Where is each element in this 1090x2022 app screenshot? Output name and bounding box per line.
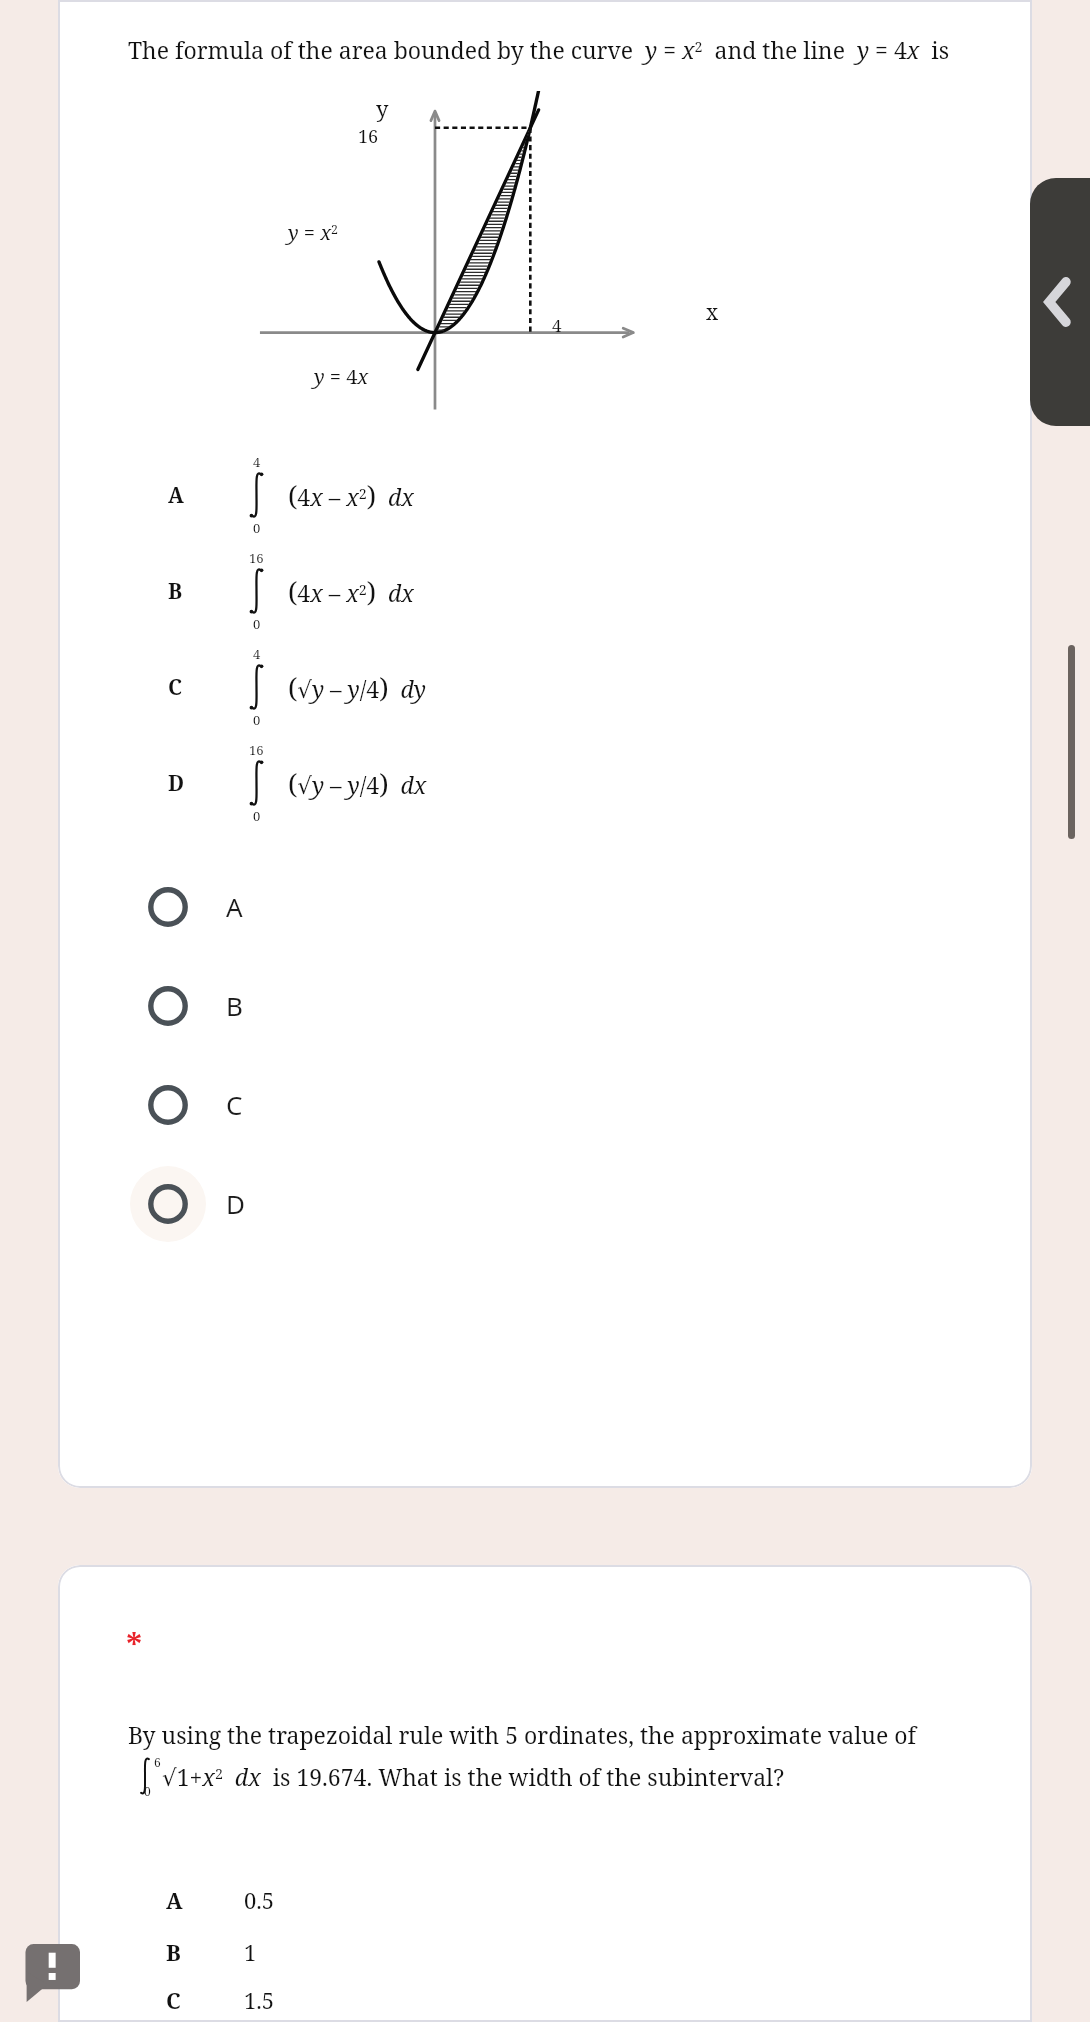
staticText: A — [166, 1885, 244, 1915]
button[interactable]: B — [58, 966, 1032, 1045]
staticText: 0 — [144, 1783, 151, 1799]
staticText: D — [168, 769, 234, 798]
staticText: C — [168, 673, 234, 702]
staticText: By using the trapezoidal rule with 5 ord… — [128, 1719, 916, 1750]
staticText: C — [226, 1087, 243, 1122]
staticText: √1+x2 dx is 19.674. What is the width of… — [162, 1761, 785, 1792]
staticText: y — [376, 93, 389, 123]
staticText: D — [226, 1186, 245, 1221]
button[interactable]: Report question — [22, 1944, 80, 2002]
staticText: The formula of the area bounded by the c… — [128, 34, 950, 65]
staticText: (√y – y/4) dx — [288, 765, 427, 802]
staticText: 0 — [253, 711, 261, 729]
staticText: * — [126, 1623, 143, 1667]
staticText: 16 — [358, 124, 379, 149]
staticText: x — [706, 298, 719, 327]
staticText: 4 — [552, 314, 562, 337]
button[interactable]: A — [58, 867, 1032, 946]
staticText: 0.5 — [244, 1885, 275, 1915]
staticText: 4 — [253, 645, 261, 663]
staticText: B — [168, 577, 234, 606]
staticText: 0 — [253, 519, 261, 537]
staticText: 0 — [253, 807, 261, 825]
button[interactable]: Open side panel — [1030, 178, 1090, 426]
button[interactable]: C — [58, 1065, 1032, 1144]
staticText: (4x – x2) dx — [288, 477, 414, 514]
staticText: y = x2 — [288, 219, 338, 246]
staticText: (4x – x2) dx — [288, 573, 414, 610]
staticText: B — [166, 1937, 244, 1967]
staticText: C — [166, 1985, 244, 2015]
staticText: 1.5 — [244, 1985, 275, 2015]
staticText: 6 — [154, 1754, 161, 1770]
staticText: (√y – y/4) dy — [288, 669, 426, 706]
staticText: B — [226, 988, 243, 1023]
button[interactable]: D — [58, 1164, 1032, 1243]
staticText: 0 — [253, 615, 261, 633]
staticText: 4 — [253, 453, 261, 471]
staticText: 1 — [244, 1937, 257, 1967]
staticText: y = 4x — [314, 363, 369, 390]
staticText: 16 — [249, 741, 264, 759]
staticText: 16 — [249, 549, 264, 567]
staticText: A — [226, 889, 243, 924]
staticText: A — [168, 481, 234, 510]
